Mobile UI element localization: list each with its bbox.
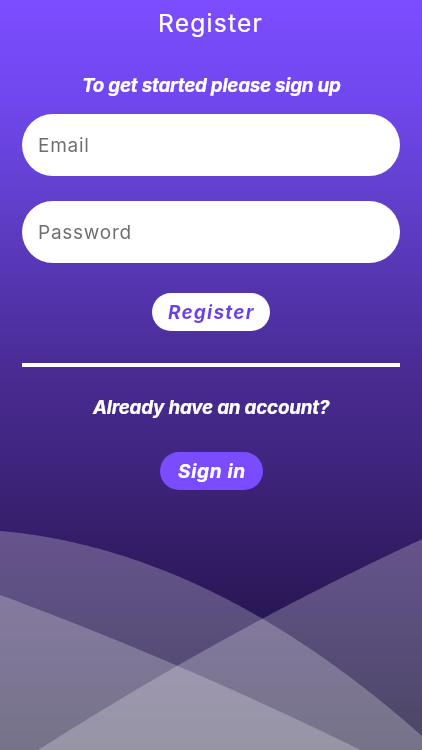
- staticText: Email: [38, 134, 90, 157]
- staticText: Register: [168, 301, 255, 324]
- staticText: Password: [38, 221, 132, 244]
- button[interactable]: Register: [152, 293, 270, 331]
- button[interactable]: Email: [22, 114, 400, 176]
- staticText: Sign in: [178, 460, 246, 483]
- button[interactable]: Sign in: [160, 452, 263, 490]
- staticText: To get started please sign up: [82, 74, 341, 97]
- staticText: Register: [158, 8, 264, 38]
- staticText: Already have an account?: [93, 396, 330, 419]
- button[interactable]: Password: [22, 201, 400, 263]
